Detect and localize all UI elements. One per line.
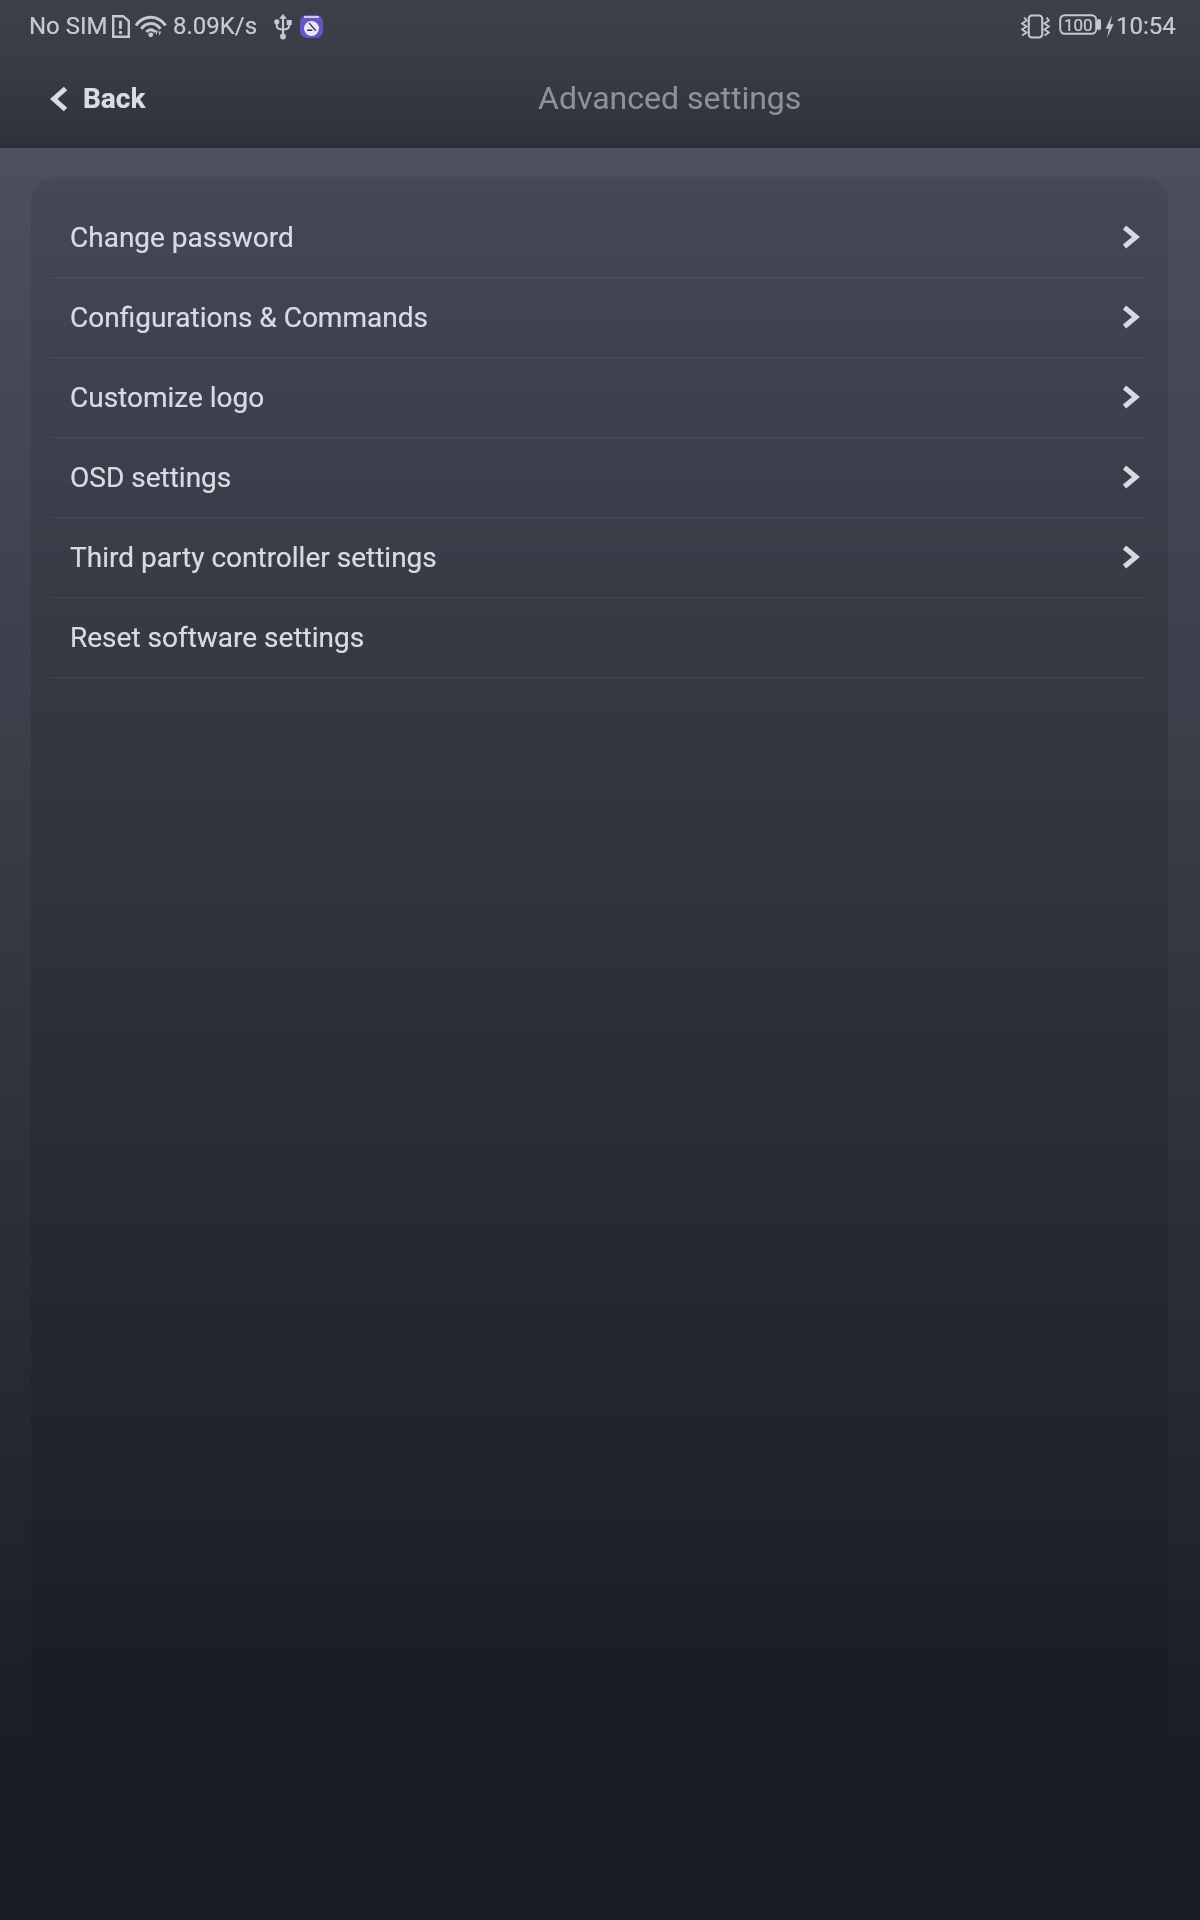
staticText: No SIM — [29, 12, 108, 40]
staticText: Third party controller settings — [70, 541, 437, 574]
button[interactable]: Third party controller settings — [31, 518, 1168, 596]
staticText: Configurations & Commands — [70, 301, 428, 334]
other: Back — [51, 86, 68, 112]
staticText: 100 — [1064, 15, 1093, 35]
button[interactable]: Reset software settings — [31, 598, 1168, 676]
staticText: 8.09K/s — [173, 12, 258, 40]
button[interactable]: Customize logo — [31, 358, 1168, 436]
staticText: Advanced settings — [538, 79, 802, 117]
staticText: Reset software settings — [70, 621, 365, 654]
button[interactable]: OSD settings — [31, 438, 1168, 516]
staticText: Back — [83, 82, 146, 115]
button[interactable]: Change password — [31, 198, 1168, 276]
staticText: OSD settings — [70, 461, 232, 494]
staticText: 10:54 — [1116, 12, 1176, 40]
button[interactable]: Configurations & Commands — [31, 278, 1168, 356]
button[interactable]: Back — [0, 68, 176, 133]
staticText: Customize logo — [70, 381, 265, 414]
staticText: Change password — [70, 221, 294, 254]
